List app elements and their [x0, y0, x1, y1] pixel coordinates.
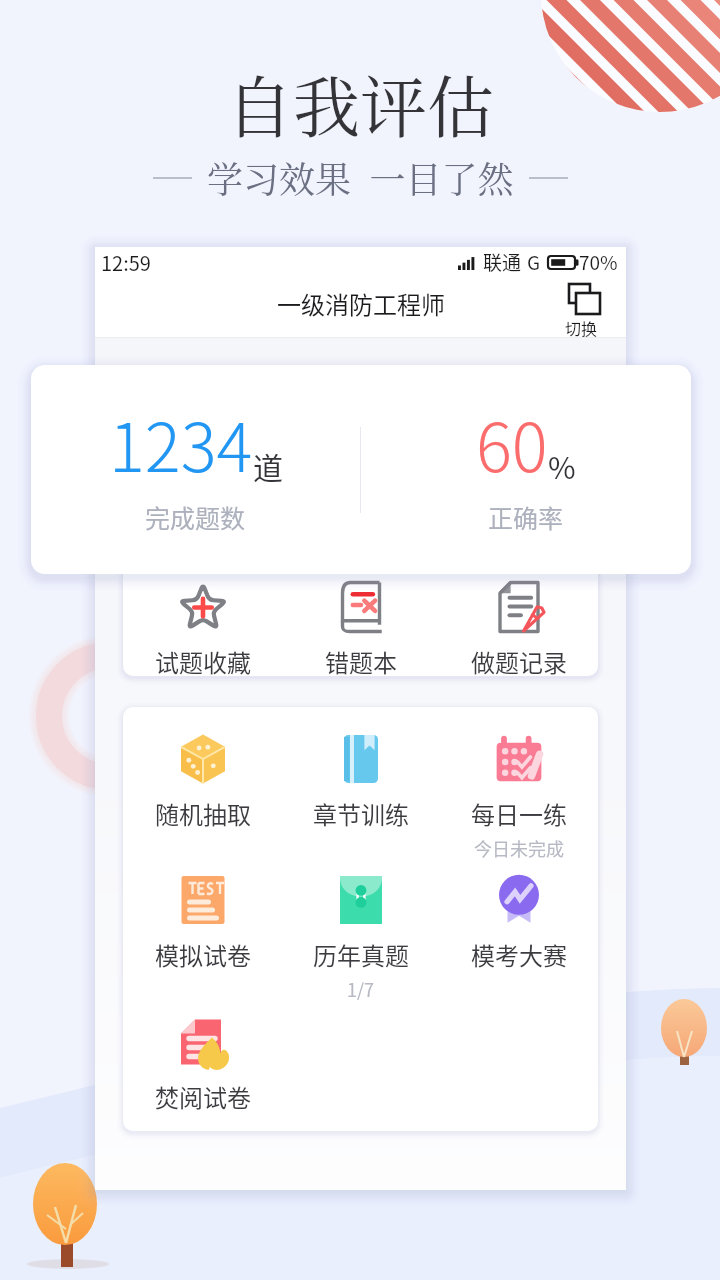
button[interactable]: 焚阅试卷 [123, 1015, 282, 1114]
staticText: 联通 [483, 248, 522, 276]
button[interactable]: 历年真题 [282, 873, 440, 1002]
staticText: 70% [579, 248, 618, 276]
staticText: 历年真题 [313, 937, 409, 972]
staticText: 切换 [565, 316, 598, 339]
staticText: 模考大赛 [471, 937, 567, 972]
staticText: 模拟试卷 [155, 937, 251, 972]
staticText: 完成题数 [145, 499, 246, 535]
staticText: 章节训练 [313, 796, 409, 831]
staticText: 错题本 [325, 644, 397, 676]
staticText: 自我评估 [226, 55, 494, 151]
button[interactable]: 做题记录 [440, 580, 598, 676]
button[interactable]: 每日一练 [440, 732, 598, 861]
staticText: 1/7 [347, 976, 375, 1002]
button[interactable]: 随机抽取 [123, 732, 282, 831]
staticText: 60 [476, 394, 548, 491]
staticText: 正确率 [488, 499, 564, 535]
staticText: 今日未完成 [474, 835, 564, 861]
staticText: 一级消防工程师 [277, 286, 445, 321]
button[interactable]: 模拟试卷 [123, 873, 282, 972]
staticText: G [527, 248, 541, 276]
staticText: 做题记录 [471, 644, 567, 676]
staticText: 随机抽取 [155, 796, 251, 831]
staticText: 试题收藏 [155, 644, 251, 676]
staticText: % [548, 444, 576, 487]
staticText: 每日一练 [471, 796, 567, 831]
button[interactable]: 模考大赛 [440, 873, 598, 972]
staticText: 焚阅试卷 [155, 1079, 251, 1114]
staticText: 学习效果 一目了然 [207, 152, 514, 204]
button[interactable]: 错题本 [282, 580, 440, 676]
button[interactable]: 试题收藏 [123, 580, 282, 676]
button[interactable]: 切换 [557, 283, 605, 339]
button[interactable]: 章节训练 [282, 732, 440, 831]
staticText: 道 [253, 444, 283, 487]
staticText: 1234 [109, 394, 253, 491]
staticText: 12:59 [101, 248, 151, 277]
